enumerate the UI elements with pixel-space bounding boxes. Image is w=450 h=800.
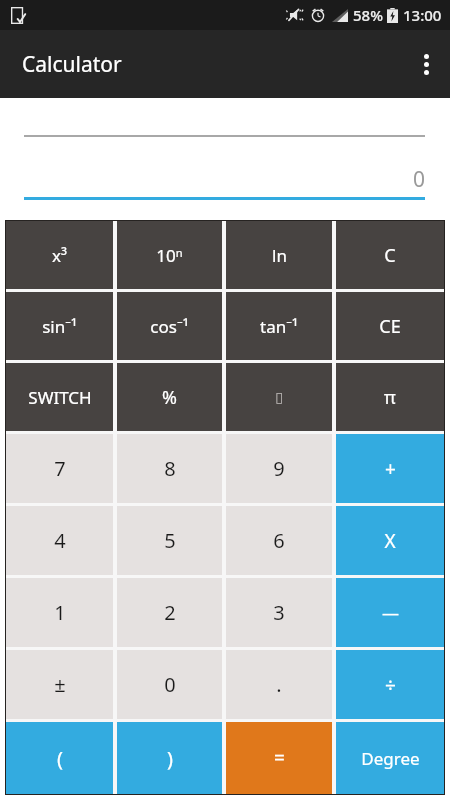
staticText: 4 — [54, 527, 66, 554]
button[interactable]: ± — [6, 650, 113, 719]
button[interactable]: 3 — [226, 578, 332, 647]
button[interactable]: — — [336, 578, 444, 647]
button[interactable]: ( — [6, 722, 113, 794]
button[interactable]: SWITCH — [6, 363, 113, 431]
button[interactable]: π — [336, 363, 444, 431]
staticText: X — [384, 528, 396, 554]
staticText: ± — [54, 671, 66, 698]
staticText: + — [385, 456, 396, 482]
staticText: sin⁻¹ — [42, 315, 77, 338]
button[interactable]: 7 — [6, 434, 113, 503]
button[interactable]: . — [226, 650, 332, 719]
staticText: 0 — [164, 671, 176, 698]
staticText: C — [384, 243, 396, 268]
staticText: 58% — [353, 5, 383, 25]
staticText: Degree — [361, 747, 420, 770]
staticText: 3 — [273, 599, 285, 626]
button[interactable]: 8 — [117, 434, 222, 503]
staticText: 1 — [54, 599, 66, 626]
staticText: tan⁻¹ — [260, 315, 298, 338]
staticText: ln — [272, 244, 287, 267]
button[interactable]: Degree — [336, 722, 444, 794]
button[interactable]: 9 — [226, 434, 332, 503]
button[interactable]: C — [336, 221, 444, 289]
button[interactable]: 2 — [117, 578, 222, 647]
button[interactable]: sin⁻¹ — [6, 292, 113, 360]
staticText: 9 — [273, 455, 285, 482]
staticText: ÷ — [385, 672, 396, 698]
staticText: 6 — [273, 527, 285, 554]
staticText: 7 — [54, 455, 66, 482]
button[interactable]: 5 — [117, 506, 222, 575]
button[interactable]: 4 — [6, 506, 113, 575]
button[interactable]: tan⁻¹ — [226, 292, 332, 360]
staticText: 0 — [24, 165, 425, 194]
button[interactable]: 0 — [117, 650, 222, 719]
button[interactable]: + — [336, 434, 444, 503]
staticText: SWITCH — [28, 386, 92, 409]
staticText: 2 — [164, 599, 176, 626]
button[interactable]: % — [117, 363, 222, 431]
staticText: % — [162, 385, 177, 410]
staticText: cos⁻¹ — [150, 315, 189, 338]
staticText: CE — [379, 314, 401, 339]
button[interactable]: cos⁻¹ — [117, 292, 222, 360]
button[interactable]: 0 — [24, 165, 425, 200]
button[interactable]: 6 — [226, 506, 332, 575]
staticText: 5 — [164, 527, 176, 554]
button[interactable]: More options — [402, 40, 450, 88]
staticText: x³ — [52, 244, 67, 267]
button[interactable]: ln — [226, 221, 332, 289]
staticText: 8 — [164, 455, 176, 482]
button[interactable]: ) — [117, 722, 222, 794]
staticText: 13:00 — [403, 5, 442, 25]
button[interactable]: ÷ — [336, 650, 444, 719]
staticText: ( — [57, 745, 63, 772]
button[interactable]: CE — [336, 292, 444, 360]
staticText: ) — [167, 745, 173, 772]
button[interactable]: 1 — [6, 578, 113, 647]
button[interactable]: ▯ — [226, 363, 332, 431]
staticText: . — [276, 671, 282, 698]
button[interactable]: 10ⁿ — [117, 221, 222, 289]
staticText: Calculator — [22, 50, 122, 79]
button[interactable]: = — [226, 722, 332, 794]
staticText: 10ⁿ — [156, 244, 183, 267]
staticText: = — [274, 745, 285, 771]
staticText: — — [382, 601, 399, 624]
staticText: ▯ — [275, 389, 283, 405]
button[interactable]: x³ — [6, 221, 113, 289]
button[interactable]: X — [336, 506, 444, 575]
staticText: π — [384, 385, 396, 410]
